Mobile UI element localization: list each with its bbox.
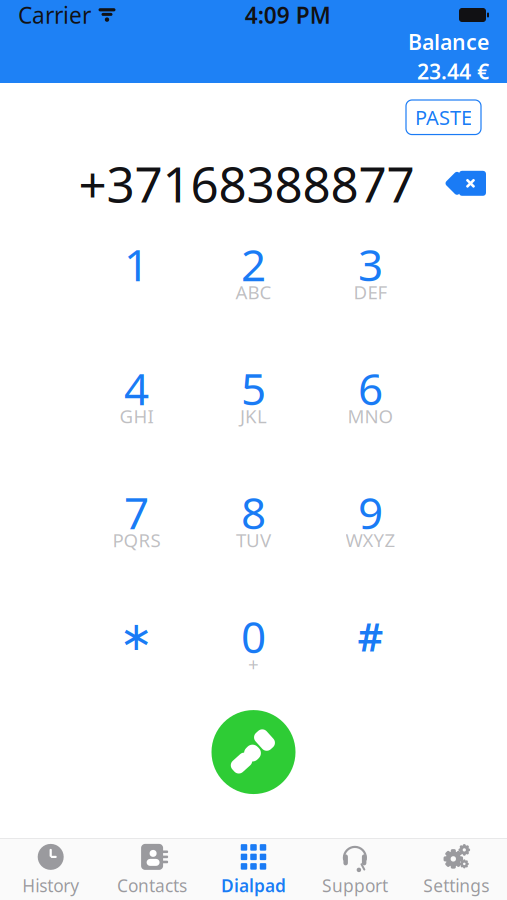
button[interactable]: Balance: [408, 24, 507, 89]
staticText: History: [22, 874, 79, 897]
button[interactable]: Delete: [445, 169, 489, 197]
staticText: PQRS: [112, 528, 160, 552]
staticText: 4: [124, 359, 149, 417]
staticText: 8: [241, 483, 266, 541]
staticText: Support: [322, 874, 388, 897]
staticText: Dialpad: [221, 874, 286, 897]
staticText: +37168388877: [78, 151, 414, 216]
staticText: 23.44 €: [417, 57, 489, 85]
button[interactable]: Support: [304, 836, 406, 900]
staticText: TUV: [236, 528, 271, 552]
staticText: 5: [241, 359, 266, 417]
button[interactable]: 5: [197, 360, 309, 434]
button[interactable]: 9: [314, 484, 426, 558]
staticText: 1: [124, 235, 149, 293]
button[interactable]: Dialpad: [203, 836, 304, 900]
staticText: MNO: [347, 404, 393, 428]
button[interactable]: 3: [314, 236, 426, 310]
button[interactable]: Contacts: [101, 836, 203, 900]
button[interactable]: Call: [211, 710, 295, 794]
staticText: ABC: [235, 280, 271, 304]
staticText: 3: [358, 235, 383, 293]
staticText: DEF: [353, 280, 387, 304]
staticText: 4:09 PM: [245, 0, 331, 30]
button[interactable]: 7: [80, 484, 192, 558]
staticText: [134, 280, 139, 304]
staticText: WXYZ: [345, 528, 395, 552]
staticText: ∗: [119, 613, 153, 659]
button[interactable]: PASTE: [406, 100, 481, 135]
staticText: Contacts: [117, 874, 187, 897]
staticText: #: [357, 609, 383, 663]
staticText: 0: [241, 607, 266, 665]
staticText: +: [248, 652, 259, 676]
button[interactable]: 8: [197, 484, 309, 558]
button[interactable]: 6: [314, 360, 426, 434]
button[interactable]: History: [0, 836, 101, 900]
button[interactable]: Settings: [406, 836, 507, 900]
button[interactable]: 1: [80, 236, 192, 310]
staticText: 6: [358, 359, 383, 417]
staticText: 2: [241, 235, 266, 293]
staticText: PASTE: [415, 104, 472, 131]
staticText: GHI: [119, 404, 153, 428]
button[interactable]: 0: [197, 608, 309, 682]
button[interactable]: 2: [197, 236, 309, 310]
button[interactable]: ∗: [80, 608, 192, 682]
staticText: Settings: [423, 874, 489, 897]
staticText: 7: [124, 483, 149, 541]
staticText: Balance: [408, 28, 489, 56]
button[interactable]: #: [314, 608, 426, 682]
button[interactable]: 4: [80, 360, 192, 434]
staticText: Carrier: [18, 0, 91, 30]
staticText: JKL: [240, 404, 267, 428]
staticText: 9: [358, 483, 383, 541]
